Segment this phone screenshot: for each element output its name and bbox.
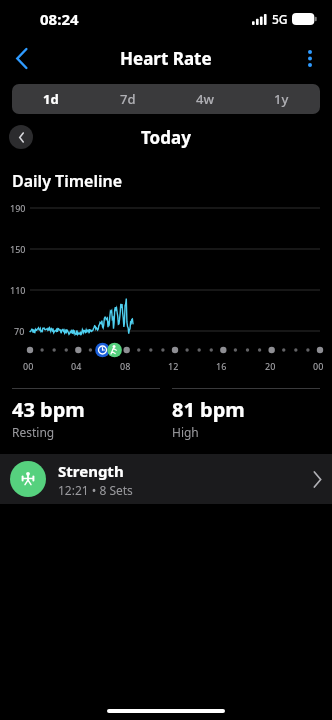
staticText: 150 <box>10 243 26 255</box>
button[interactable]: Back <box>0 38 44 78</box>
staticText: Today <box>141 126 191 149</box>
staticText: 5G <box>272 11 288 27</box>
staticText: 70 <box>14 325 25 337</box>
staticText: 00 <box>313 360 324 372</box>
staticText: 00 <box>23 360 34 372</box>
button[interactable]: More options <box>288 38 332 78</box>
button[interactable]: Previous day <box>9 125 33 149</box>
staticText: 20 <box>265 360 276 372</box>
staticText: 12:21 • 8 Sets <box>58 482 133 498</box>
staticText: 4w <box>196 90 214 108</box>
button[interactable]: 1y <box>243 84 320 114</box>
staticText: 16 <box>216 360 227 372</box>
staticText: 1y <box>274 90 289 108</box>
button[interactable]: 43 bpm <box>12 388 160 440</box>
staticText: Strength <box>58 461 124 481</box>
staticText: High <box>172 424 199 440</box>
button[interactable]: 7d <box>89 84 166 114</box>
button[interactable]: 81 bpm <box>172 388 320 440</box>
button[interactable]: 4w <box>166 84 243 114</box>
button[interactable]: Strength <box>0 454 332 504</box>
staticText: 1d <box>43 90 59 108</box>
staticText: 110 <box>10 284 26 296</box>
staticText: 04 <box>71 360 82 372</box>
button[interactable]: 1d <box>12 84 89 114</box>
staticText: 08 <box>120 360 131 372</box>
staticText: 12 <box>168 360 179 372</box>
staticText: 81 bpm <box>172 396 245 423</box>
staticText: Resting <box>12 424 55 440</box>
staticText: 43 bpm <box>12 396 85 423</box>
staticText: Heart Rate <box>120 47 212 70</box>
staticText: 08:24 <box>40 9 79 29</box>
staticText: 7d <box>120 90 136 108</box>
staticText: Daily Timeline <box>12 170 123 192</box>
staticText: 190 <box>10 202 26 214</box>
